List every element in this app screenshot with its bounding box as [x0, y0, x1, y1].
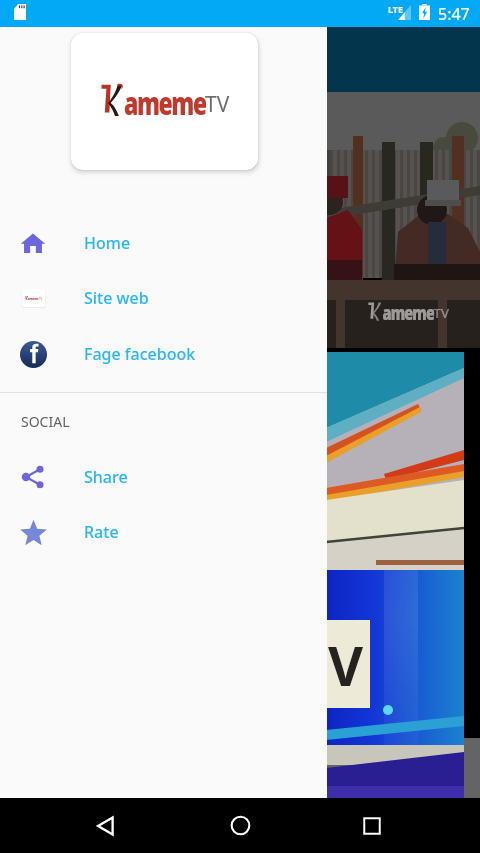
staticText: V	[328, 628, 364, 702]
staticText: Share	[84, 466, 128, 488]
button[interactable]: Share	[0, 449, 327, 505]
staticText: TV	[39, 297, 43, 301]
button[interactable]: Rate	[0, 504, 327, 560]
button[interactable]: Home	[0, 215, 327, 271]
staticText: Site web	[84, 287, 149, 309]
staticText: Home	[84, 232, 131, 254]
staticText: LTE	[388, 3, 404, 15]
button[interactable]: Fage facebook	[0, 326, 327, 382]
button[interactable]: Home	[202, 798, 278, 853]
staticText: Rate	[84, 521, 119, 543]
staticText: ameme	[382, 300, 434, 320]
staticText: ameme	[28, 296, 39, 300]
staticText: ameme	[124, 81, 206, 115]
staticText: TV	[433, 306, 449, 322]
button[interactable]: Back	[68, 798, 144, 853]
staticText: 5:47	[438, 3, 470, 25]
button[interactable]: Recents	[334, 798, 410, 853]
staticText: TV	[205, 90, 230, 119]
staticText: SOCIAL	[21, 412, 70, 431]
staticText: Fage facebook	[84, 343, 196, 365]
button[interactable]: ameme	[0, 270, 327, 326]
